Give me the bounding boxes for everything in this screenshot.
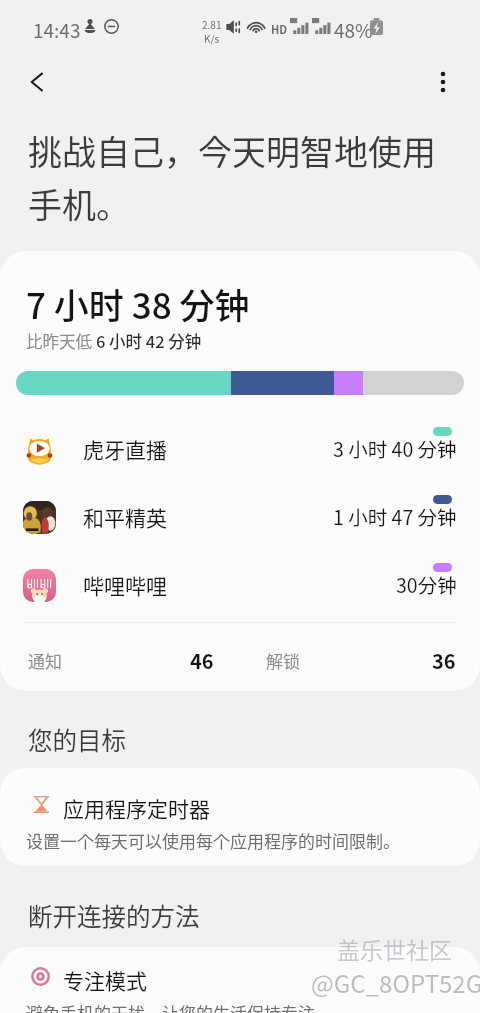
staticText: 和平精英 (83, 502, 167, 532)
staticText: 比昨天低 (26, 329, 96, 353)
staticText: K/s (204, 31, 220, 45)
staticText: 盖乐世社区 (337, 932, 452, 965)
staticText: 您的目标 (28, 722, 126, 757)
button[interactable]: 和平精英 (0, 483, 480, 551)
staticText: @GC_8OPT52G (311, 965, 480, 1000)
staticText: 6 小时 42 分钟 (96, 329, 202, 353)
staticText: 3 小时 40 分钟 (333, 434, 457, 462)
button[interactable]: 应用程序定时器 (0, 768, 480, 866)
staticText: 7 小时 38 分钟 (26, 278, 250, 329)
staticText: 专注模式 (63, 965, 147, 995)
staticText: 哔哩哔哩 (83, 570, 167, 600)
staticText: 48% (334, 16, 373, 44)
staticText: 设置一个每天可以使用每个应用程序的时间限制。 (26, 828, 400, 853)
staticText: 应用程序定时器 (63, 793, 210, 823)
staticText: 30分钟 (396, 570, 457, 598)
button[interactable]: 哔哩哔哩 (0, 551, 480, 619)
staticText: 36 (432, 646, 456, 675)
staticText: 虎牙直播 (83, 434, 167, 464)
staticText: 14:43 (33, 16, 81, 44)
staticText: 1 小时 47 分钟 (333, 502, 457, 530)
staticText: 解锁 (266, 648, 300, 673)
staticText: 挑战自己，今天明智地使用手机。 (28, 126, 456, 228)
staticText: HD (271, 21, 288, 37)
staticText: 通知 (28, 648, 62, 673)
button[interactable]: 专注模式 (0, 947, 480, 1013)
staticText: 46 (190, 646, 214, 675)
staticText: 避免手机的干扰，让您的生活保持专注。 (26, 1000, 332, 1013)
button[interactable]: Back (14, 59, 60, 105)
staticText: 2.81 (202, 17, 222, 31)
button[interactable]: 虎牙直播 (0, 415, 480, 483)
staticText: 断开连接的方法 (28, 898, 200, 933)
button[interactable]: More options (421, 60, 465, 104)
